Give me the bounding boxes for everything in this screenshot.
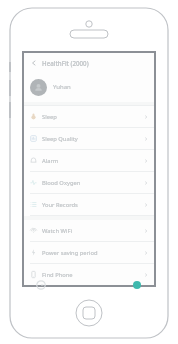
button[interactable]: Find Phone (24, 264, 154, 285)
button[interactable]: Your Records (24, 194, 154, 215)
staticText: Sleep (42, 113, 57, 121)
button[interactable]: Back (29, 58, 38, 67)
button[interactable]: Back (24, 53, 154, 72)
button[interactable]: Power saving period (24, 242, 154, 263)
staticText: HealthFit (2000) (42, 59, 89, 67)
staticText: Alarm (42, 157, 59, 165)
staticText: Yuhan (53, 83, 71, 91)
staticText: Sleep Quality (42, 135, 78, 143)
button[interactable]: Watch WiFi (24, 220, 154, 241)
staticText: Power saving period (42, 249, 98, 257)
staticText: Your Records (42, 201, 78, 209)
staticText: Find Phone (42, 271, 73, 279)
button[interactable]: Blood Oxygen (24, 172, 154, 193)
button[interactable]: Sleep (24, 106, 154, 127)
button[interactable]: Yuhan (24, 72, 154, 102)
button[interactable]: Alarm (24, 150, 154, 171)
staticText: Blood Oxygen (42, 179, 81, 187)
button[interactable]: Sleep Quality (24, 128, 154, 149)
staticText: Watch WiFi (42, 227, 72, 235)
